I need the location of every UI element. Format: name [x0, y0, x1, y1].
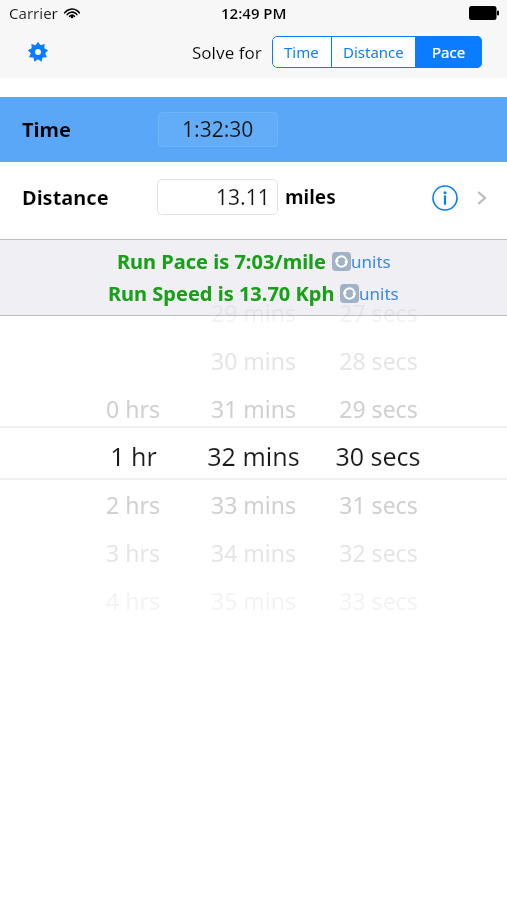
staticText: Time — [22, 116, 71, 143]
button[interactable]: Pace — [416, 36, 482, 68]
staticText: 1:32:30 — [182, 115, 254, 144]
button[interactable]: 0 hrs — [0, 316, 507, 881]
button[interactable]: Info — [428, 181, 461, 214]
staticText: 29 mins — [211, 297, 296, 328]
button[interactable]: 1:32:30 — [158, 112, 278, 147]
staticText: 2 hrs — [106, 489, 160, 520]
staticText: Run Pace is 7:03/mile — [117, 248, 327, 275]
staticText: units — [351, 250, 391, 273]
staticText: 31 mins — [211, 393, 296, 424]
button[interactable]: units — [332, 250, 391, 273]
staticText: 3 hrs — [106, 537, 160, 568]
staticText: Pace — [432, 42, 466, 62]
staticText: Time — [284, 42, 319, 62]
staticText: 30 secs — [335, 439, 421, 473]
staticText: 13.11 — [216, 183, 270, 212]
button[interactable]: Distance — [332, 36, 415, 68]
button[interactable]: Time — [272, 36, 331, 68]
staticText: 0 hrs — [106, 393, 160, 424]
staticText: miles — [285, 184, 336, 210]
staticText: 32 secs — [339, 537, 418, 568]
staticText: 4 hrs — [106, 585, 160, 616]
staticText: 34 mins — [211, 537, 296, 568]
staticText: Run Speed is 13.70 Kph — [108, 280, 335, 307]
staticText: Carrier — [9, 3, 58, 23]
button[interactable]: units — [340, 282, 399, 305]
button[interactable]: More — [468, 184, 496, 212]
staticText: 35 mins — [211, 585, 296, 616]
button[interactable]: 13.11 — [157, 179, 278, 215]
staticText: 28 secs — [339, 345, 418, 376]
staticText: 27 secs — [339, 297, 418, 328]
staticText: 32 mins — [207, 439, 300, 473]
button[interactable]: Time — [0, 97, 507, 162]
staticText: units — [359, 282, 399, 305]
staticText: Distance — [22, 184, 109, 211]
staticText: 30 mins — [211, 345, 296, 376]
button[interactable]: Distance — [0, 162, 507, 233]
staticText: 29 secs — [339, 393, 418, 424]
staticText: 1 hr — [110, 439, 157, 473]
button[interactable]: Settings — [20, 34, 56, 70]
staticText: 33 mins — [211, 489, 296, 520]
staticText: Distance — [343, 42, 404, 62]
staticText: 31 secs — [339, 489, 418, 520]
staticText: 33 secs — [339, 585, 418, 616]
staticText: 12:49 PM — [221, 3, 287, 23]
staticText: Solve for — [192, 41, 262, 64]
